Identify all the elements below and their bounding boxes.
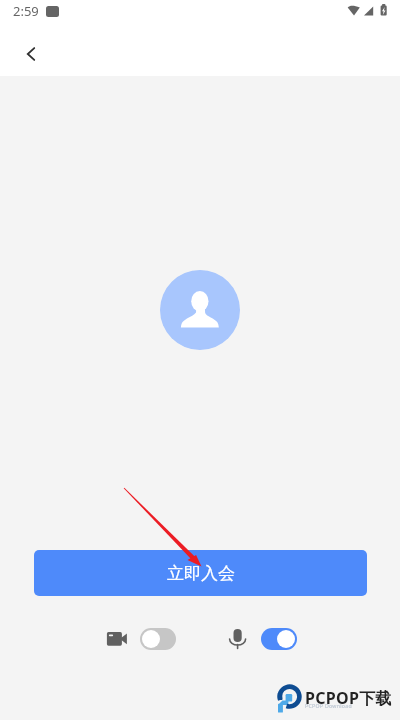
staticText: 2:59 [13, 2, 39, 20]
button[interactable]: Back [11, 34, 51, 74]
staticText: 立即入会 [167, 563, 235, 584]
button[interactable]: Toggle off [140, 628, 176, 650]
staticText: PCPOP Download [305, 702, 352, 709]
button[interactable]: Microphone [224, 622, 252, 652]
button[interactable]: 立即入会 [34, 550, 367, 596]
button[interactable]: Camera [100, 624, 132, 650]
button[interactable]: Toggle on [261, 628, 297, 650]
staticText: PCPOP下载 [305, 687, 392, 709]
